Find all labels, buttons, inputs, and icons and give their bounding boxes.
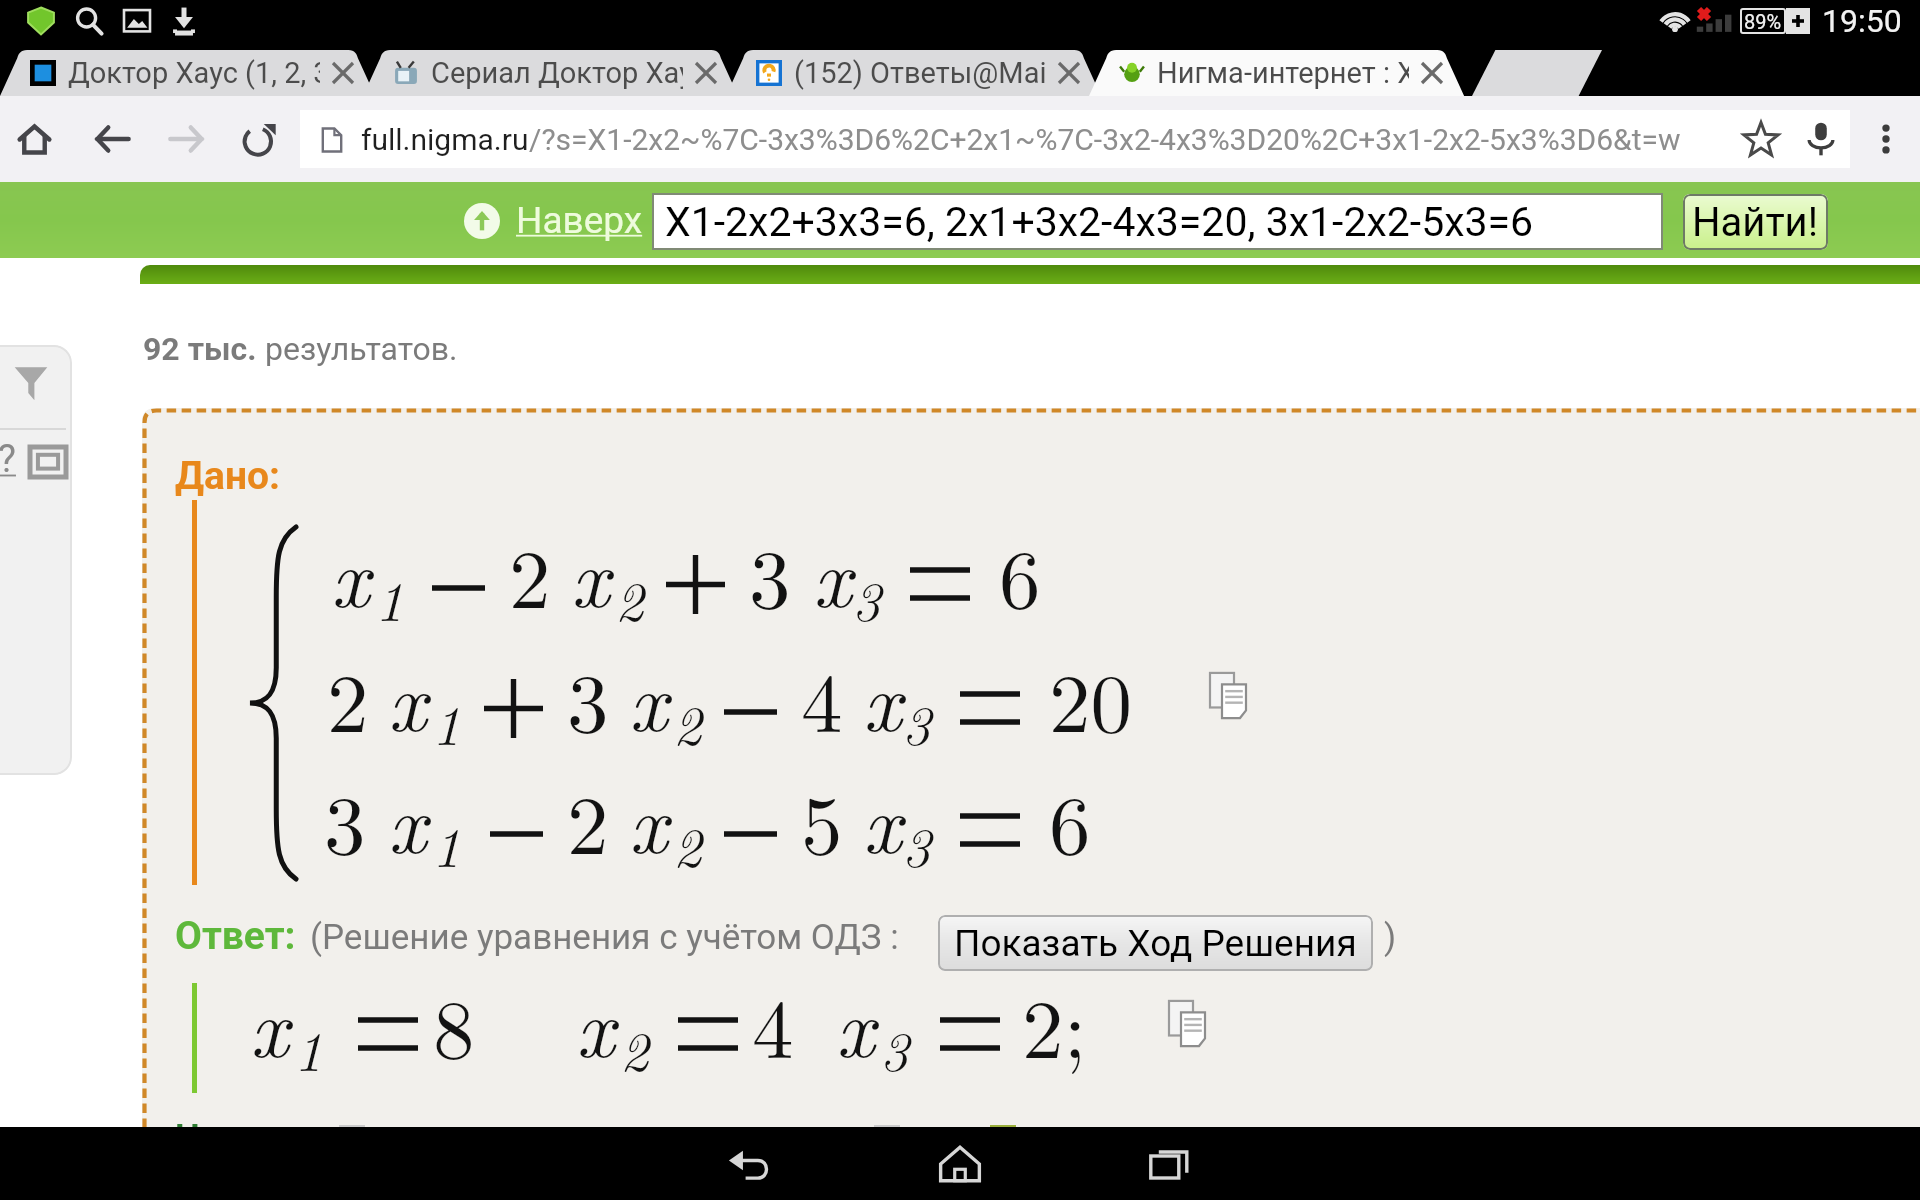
staticText: x — [576, 964, 615, 1081]
staticText: x — [250, 964, 289, 1081]
staticText: 3 — [749, 514, 789, 632]
button[interactable]: Back — [77, 96, 149, 182]
button[interactable]: Сериал Доктор Хаус — [363, 50, 745, 96]
staticText: x — [388, 638, 427, 755]
staticText: Найти! — [1692, 199, 1819, 246]
staticText: 3 — [902, 804, 926, 883]
button[interactable]: Copy — [1208, 671, 1248, 719]
staticText: 3 — [902, 682, 926, 761]
staticText: full.nigma.ru — [361, 122, 529, 157]
button[interactable]: Найти! — [1683, 194, 1828, 250]
button[interactable]: Close tab — [326, 56, 360, 90]
button[interactable]: (152) Ответы@Mail.R — [726, 50, 1108, 96]
staticText: 2 — [509, 514, 549, 632]
staticText: x — [863, 638, 902, 755]
staticText: x — [836, 964, 875, 1081]
staticText: (152) Ответы@Mail.R — [794, 56, 1046, 90]
staticText: 2 — [620, 1008, 644, 1087]
staticText: 1 — [432, 804, 454, 883]
staticText: 3 — [567, 638, 607, 756]
button[interactable]: Close tab — [1415, 56, 1449, 90]
staticText: 5 — [801, 760, 841, 878]
staticText: 3 — [324, 760, 364, 878]
button[interactable]: Нигма-интернет : X1 — [1089, 50, 1471, 96]
staticText: результатов. — [257, 330, 458, 368]
staticText: з — [311, 1117, 329, 1158]
staticText: 6 — [999, 514, 1039, 632]
staticText: Наверх — [516, 199, 643, 242]
button[interactable]: More options — [1856, 96, 1916, 182]
button[interactable]: Recent apps — [1095, 1127, 1245, 1200]
button[interactable]: Home — [885, 1127, 1035, 1200]
staticText: x — [629, 638, 668, 755]
button[interactable]: Voice search — [1792, 110, 1850, 168]
staticText: 4 — [801, 638, 841, 756]
staticText: ) — [1384, 917, 1397, 958]
staticText: 2 — [327, 638, 367, 756]
button[interactable]: Copy — [1167, 999, 1207, 1047]
button[interactable]: Close tab — [689, 56, 723, 90]
staticText: э — [415, 1117, 434, 1158]
button[interactable]: X1-2x2+3x3=6, 2x1+3x2-4x3=20, 3x1-2x2-5x… — [654, 195, 1661, 248]
button[interactable]: Back — [675, 1127, 825, 1200]
button[interactable]: New tab — [1472, 50, 1602, 96]
staticText: x — [331, 514, 370, 631]
staticText: x — [571, 514, 610, 631]
staticText: X1-2x2+3x3=6, 2x1+3x2-4x3=20, 3x1-2x2-5x… — [665, 198, 1534, 246]
button[interactable]: Home — [0, 96, 68, 182]
button[interactable]: Доктор Хаус (1, 2, 3, — [0, 50, 382, 96]
staticText: x — [629, 760, 668, 877]
button[interactable]: Наверх — [464, 199, 643, 242]
staticText: 20 — [1049, 638, 1132, 756]
staticText: x — [388, 760, 427, 877]
staticText: 2 — [567, 760, 607, 878]
staticText: x — [863, 760, 902, 877]
staticText: 1 — [432, 682, 454, 761]
staticText: Нигма-интернет : X1 — [1157, 56, 1409, 90]
staticText: 89% — [1744, 10, 1782, 33]
staticText: (Решение уравнения с учётом ОДЗ : — [310, 917, 899, 958]
staticText: Дано: — [175, 453, 281, 499]
staticText: /?s=X1-2x2~%7C-3x3%3D6%2C+2x1~%7C-3x2-4x… — [529, 122, 1681, 157]
staticText: Показать Ход Решения — [954, 922, 1357, 965]
button[interactable]: Bookmark — [1730, 110, 1792, 168]
staticText: Начало — [175, 1117, 297, 1158]
staticText: 6 — [1049, 760, 1089, 878]
button[interactable]: Показать Ход Решения — [938, 915, 1373, 971]
staticText: 1 — [294, 1008, 318, 1087]
staticText: Ответ: — [175, 913, 296, 959]
staticText: 2 — [615, 558, 637, 637]
button[interactable]: full.nigma.ru — [300, 110, 1850, 168]
button[interactable]: Forward — [150, 96, 222, 182]
staticText: 3 — [852, 558, 876, 637]
staticText: 2 — [673, 804, 695, 883]
staticText: 1 — [375, 558, 397, 637]
staticText: 4 — [752, 964, 792, 1082]
staticText: x — [813, 514, 852, 631]
staticText: 3 — [880, 1008, 904, 1087]
staticText: 2; — [1022, 964, 1087, 1082]
staticText: 2 — [673, 682, 695, 761]
staticText: Сериал Доктор Хаус — [431, 56, 683, 90]
staticText: ? — [0, 437, 16, 482]
button[interactable]: Close tab — [1052, 56, 1086, 90]
staticText: 92 тыс. — [143, 330, 257, 368]
staticText: 8 — [433, 964, 473, 1082]
staticText: 19:50 — [1822, 2, 1902, 40]
staticText: Доктор Хаус (1, 2, 3, — [68, 56, 320, 90]
button[interactable]: Reload — [222, 96, 294, 182]
